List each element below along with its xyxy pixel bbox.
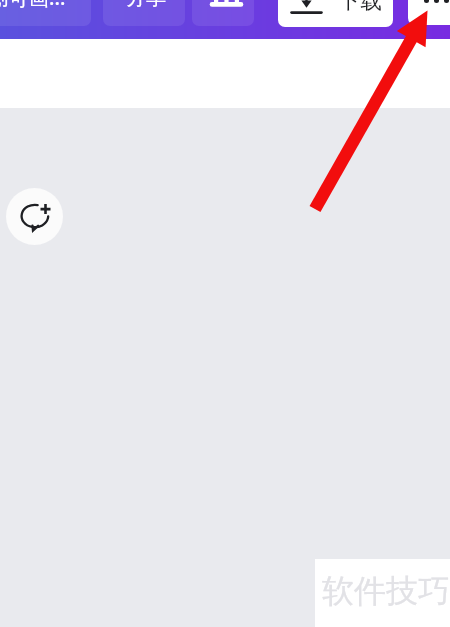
button[interactable]: New chat [6,188,63,245]
staticText: 创可画... [0,0,66,11]
staticText: 下载 [338,0,382,15]
button[interactable]: 分享 [103,0,185,26]
staticText: 软件技巧 [322,571,450,611]
staticText: 分享 [126,0,166,10]
button[interactable]: 下载 [278,0,393,27]
button[interactable]: Delete [192,0,254,26]
button[interactable]: More options [408,0,450,25]
button[interactable]: 创可画... [0,0,91,26]
